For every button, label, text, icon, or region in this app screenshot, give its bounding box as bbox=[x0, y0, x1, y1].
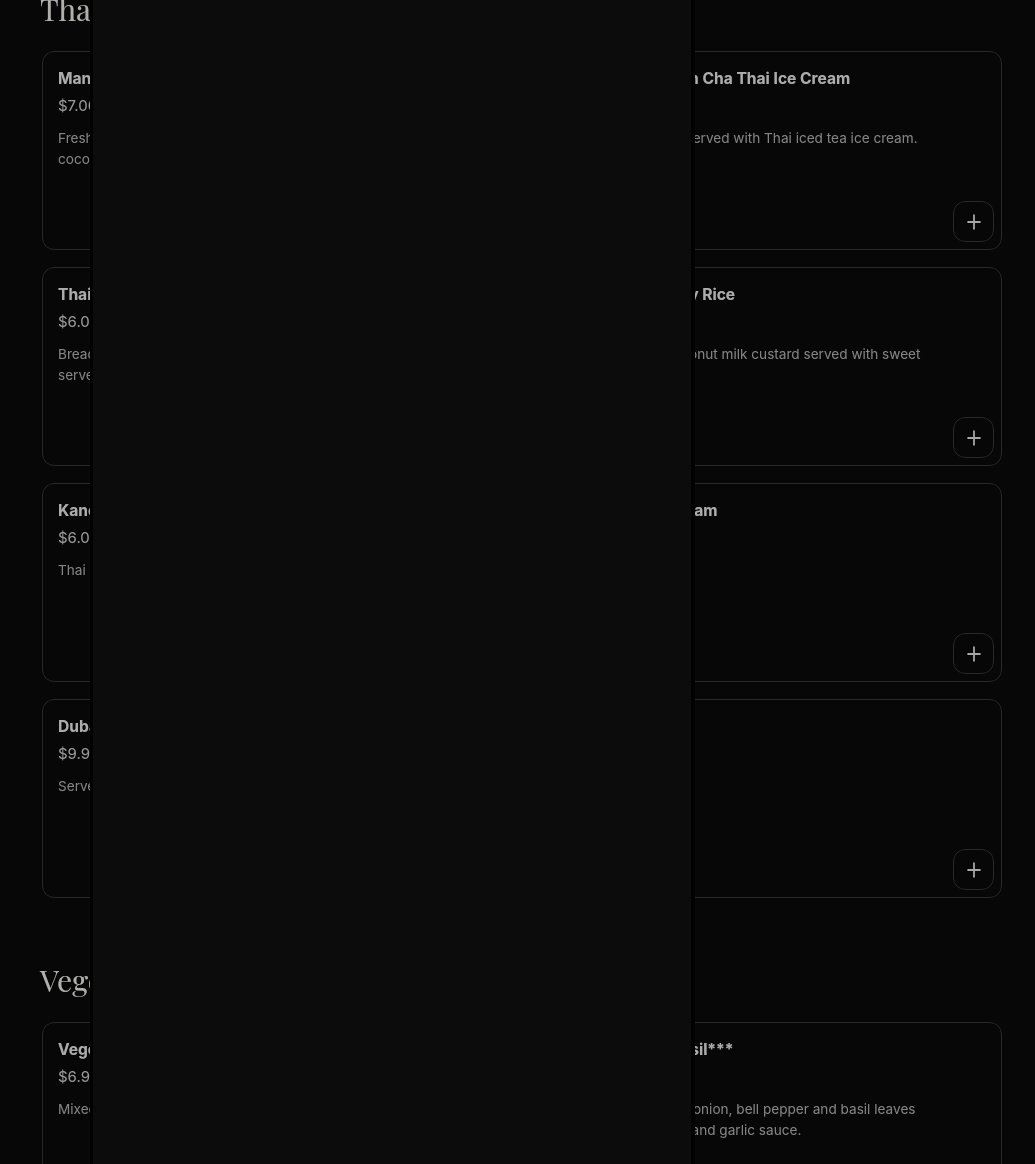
staticText: Served with pistachio cream and premium … bbox=[58, 778, 400, 794]
button[interactable]: Add Sangkaya Sticky Rice bbox=[953, 417, 994, 458]
staticText: $6.00 bbox=[58, 312, 100, 330]
staticText: Coconut Ice Cream bbox=[572, 501, 718, 520]
staticText: Sangkaya Sticky Rice bbox=[572, 285, 736, 304]
button[interactable]: Add Coconut Ice Cream bbox=[953, 633, 994, 674]
staticText: Thai Donuts bbox=[58, 285, 150, 304]
staticText: Thai coconut pudding. bbox=[58, 562, 203, 578]
button[interactable]: Kanom Krok bbox=[42, 483, 1002, 682]
button[interactable]: Add Banana Roti with Cha Thai Ice Cream bbox=[953, 201, 994, 242]
staticText: Mango Sticky Rice bbox=[58, 69, 199, 88]
staticText: Vegetarian bbox=[40, 960, 184, 1000]
staticText: Bread dough deep fried until golden brow… bbox=[58, 346, 405, 383]
staticText: $6.95 bbox=[58, 1067, 100, 1085]
staticText: Banana Roti with Cha Thai Ice Cream bbox=[572, 69, 851, 88]
staticText: Sweet sticky rice served with Thai iced … bbox=[572, 130, 918, 146]
staticText: $6.00 bbox=[58, 528, 100, 546]
button[interactable]: Add bbox=[953, 849, 994, 890]
staticText: Dubai Chocolate bbox=[58, 717, 184, 736]
staticText: Mixed vegetables, onion, bell pepper and… bbox=[572, 1101, 942, 1138]
staticText: Mixed vegetables, tofu with sweet basil … bbox=[58, 1101, 358, 1117]
staticText: Thai Desserts bbox=[40, 0, 224, 29]
staticText: Fresh mango slices served with sweet sti… bbox=[58, 130, 405, 167]
button[interactable]: Dubai Chocolate bbox=[42, 699, 1002, 898]
staticText: $7.00 bbox=[58, 96, 98, 114]
button[interactable]: Mango Sticky Rice bbox=[42, 51, 1002, 250]
button[interactable]: Thai Donuts bbox=[42, 267, 1002, 466]
staticText: Vegetarian Pad Thai bbox=[58, 1040, 211, 1059]
button[interactable]: Vegetarian Pad Thai bbox=[42, 1022, 1002, 1164]
staticText: $9.95 bbox=[58, 744, 100, 762]
staticText: Kanom Krok bbox=[58, 501, 152, 520]
staticText: Pad Ka Prow Basil*** bbox=[572, 1040, 734, 1059]
staticText: Silky steamed coconut milk custard serve… bbox=[572, 346, 942, 383]
